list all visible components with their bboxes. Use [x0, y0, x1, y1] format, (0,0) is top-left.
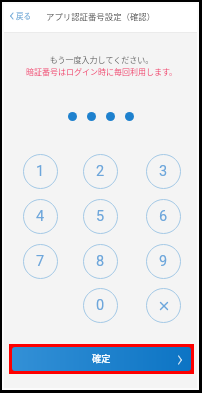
button[interactable]: Delete [146, 288, 181, 323]
button[interactable]: 戻る [2, 5, 40, 26]
staticText: 6 [159, 208, 168, 225]
staticText: 0 [96, 297, 105, 314]
staticText: アプリ認証番号設定（確認） [46, 10, 156, 22]
button[interactable]: 9 [146, 244, 181, 279]
staticText: 5 [96, 208, 105, 225]
button[interactable]: 6 [146, 199, 181, 234]
staticText: 4 [36, 208, 45, 225]
staticText: 暗証番号はログイン時に毎回利用します。 [3, 66, 200, 78]
staticText: 8 [96, 253, 105, 270]
button[interactable]: 4 [23, 199, 58, 234]
staticText: 2 [96, 163, 105, 180]
staticText: 確定 [92, 351, 111, 364]
button[interactable]: 3 [146, 154, 181, 189]
button[interactable]: 8 [83, 244, 118, 279]
staticText: 1 [36, 163, 45, 180]
staticText: 9 [159, 253, 168, 270]
button[interactable]: 確定 [12, 347, 191, 371]
staticText: 3 [159, 163, 168, 180]
staticText: 戻る [16, 10, 31, 21]
button[interactable]: 5 [83, 199, 118, 234]
button[interactable]: 2 [83, 154, 118, 189]
staticText: もう一度入力してください。 [3, 54, 200, 66]
button[interactable]: 0 [83, 288, 118, 323]
button[interactable]: 7 [23, 244, 58, 279]
staticText: 7 [36, 253, 45, 270]
button[interactable]: 1 [23, 154, 58, 189]
